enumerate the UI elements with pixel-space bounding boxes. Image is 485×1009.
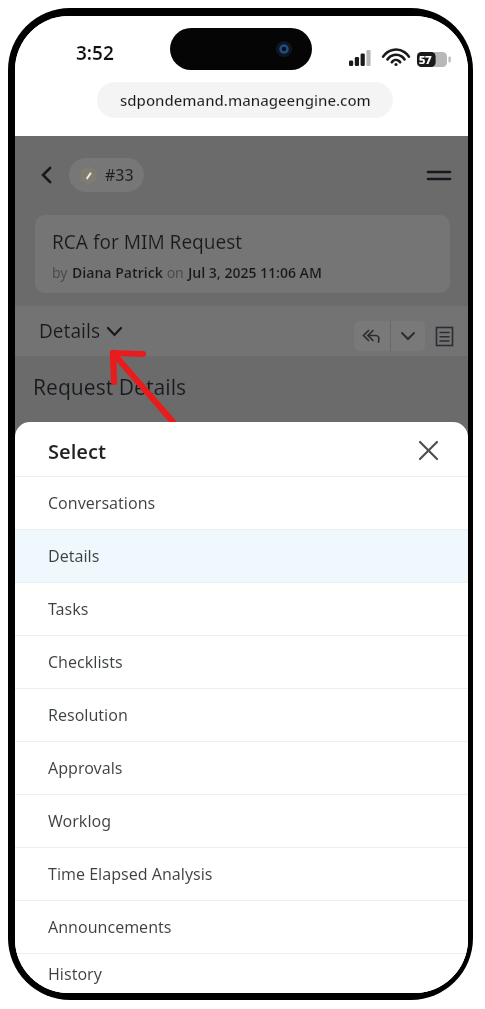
button[interactable]: Conversations: [15, 477, 468, 529]
button[interactable]: RCA for MIM Request: [35, 215, 450, 293]
button[interactable]: Worklog: [15, 795, 468, 847]
button[interactable]: Close: [410, 432, 446, 468]
button[interactable]: Reply all: [354, 321, 390, 351]
staticText: sdpondemand.manageengine.com: [120, 90, 371, 110]
button[interactable]: History: [15, 954, 468, 993]
staticText: by: [52, 263, 72, 282]
staticText: Unable to send mails from: [248, 419, 454, 441]
staticText: Checklists: [48, 651, 123, 673]
button[interactable]: Notes: [427, 319, 461, 353]
staticText: Resolution: [48, 704, 128, 726]
staticText: Worklog: [48, 810, 112, 832]
button[interactable]: Time Elapsed Analysis: [15, 848, 468, 900]
button[interactable]: Details: [15, 530, 468, 582]
button[interactable]: sdpondemand.manageengine.com: [97, 82, 393, 118]
button[interactable]: Checklists: [15, 636, 468, 688]
staticText: Conversations: [48, 492, 156, 514]
staticText: Tasks: [48, 598, 89, 620]
button[interactable]: Details: [39, 314, 121, 348]
staticText: Approvals: [48, 757, 123, 779]
button[interactable]: More reply options: [391, 321, 425, 351]
staticText: Jul 3, 2025 11:06 AM: [188, 263, 323, 282]
staticText: Announcements: [48, 916, 172, 938]
staticText: Select: [48, 438, 107, 465]
staticText: Details: [39, 318, 101, 344]
button[interactable]: Menu: [417, 153, 461, 197]
button[interactable]: #33: [69, 158, 144, 192]
staticText: Details: [48, 545, 100, 567]
staticText: History: [48, 963, 102, 985]
button[interactable]: Approvals: [15, 742, 468, 794]
button[interactable]: Announcements: [15, 901, 468, 953]
button[interactable]: Back: [25, 153, 69, 197]
staticText: Issue: [55, 419, 95, 441]
staticText: Diana Patrick: [72, 263, 163, 282]
button[interactable]: Tasks: [15, 583, 468, 635]
staticText: 57: [419, 52, 432, 67]
button[interactable]: Resolution: [15, 689, 468, 741]
staticText: RCA for MIM Request: [52, 229, 243, 255]
staticText: Time Elapsed Analysis: [48, 863, 213, 885]
staticText: on: [163, 263, 188, 282]
staticText: 3:52: [76, 40, 114, 66]
staticText: #33: [105, 164, 134, 186]
staticText: Request Details: [33, 373, 187, 402]
